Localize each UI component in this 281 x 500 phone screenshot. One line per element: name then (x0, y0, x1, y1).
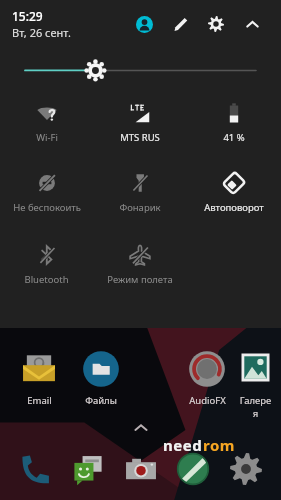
staticText: Режим полета (107, 273, 173, 286)
button[interactable]: Яркость (0, 48, 281, 92)
button[interactable]: Не беспокоить (0, 168, 93, 218)
staticText: Bluetooth (24, 273, 69, 286)
staticText: Не беспокоить (13, 201, 81, 214)
button[interactable]: Браузер (170, 446, 216, 492)
button[interactable]: Сообщения (65, 446, 111, 492)
button[interactable]: Файлы (70, 348, 132, 409)
button[interactable]: Телефон (13, 446, 59, 492)
button[interactable]: Изменить (165, 9, 195, 39)
staticText: 15:29 (12, 8, 43, 24)
staticText: MTS RUS (120, 131, 160, 144)
button[interactable]: Настройки (201, 9, 231, 39)
staticText: AudioFX (189, 394, 226, 407)
staticText: Email (27, 394, 52, 407)
staticText: 41 % (223, 131, 245, 144)
button[interactable]: AudioFX (176, 348, 238, 409)
button[interactable]: Email (8, 348, 70, 409)
staticText: rom (203, 435, 235, 455)
staticText: Wi-Fi (36, 131, 58, 144)
staticText: Автоповорот (204, 201, 264, 214)
button[interactable]: 41 % (187, 98, 281, 148)
button[interactable]: Bluetooth (0, 240, 93, 290)
staticText: need (163, 435, 203, 455)
button[interactable]: Камера (118, 446, 164, 492)
button[interactable]: Профиль (129, 9, 159, 39)
button[interactable]: Фонарик (93, 168, 187, 218)
button[interactable]: Настройки (223, 446, 269, 492)
button[interactable]: Открыть список приложений (128, 415, 154, 441)
button[interactable]: Wi-Fi (0, 98, 93, 148)
button[interactable]: MTS RUS (93, 98, 187, 148)
staticText: Вт, 26 сент. (12, 25, 71, 40)
button[interactable]: Свернуть (237, 9, 267, 39)
button[interactable]: Режим полета (93, 240, 187, 290)
staticText: Файлы (85, 394, 117, 407)
staticText: Галерея (238, 394, 273, 420)
button[interactable]: Автоповорот (187, 168, 281, 218)
button[interactable]: Галерея (238, 348, 273, 422)
staticText: Фонарик (119, 201, 161, 214)
